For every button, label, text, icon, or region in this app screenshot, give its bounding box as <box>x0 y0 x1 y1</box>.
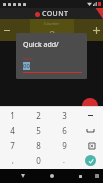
button[interactable]: Add counter <box>82 98 98 114</box>
button[interactable]: 7 <box>0 138 25 153</box>
staticText: 5 <box>36 125 41 136</box>
button[interactable]: 9 <box>51 138 77 153</box>
button[interactable]: Enter <box>77 153 103 168</box>
staticText: Value <box>23 56 34 61</box>
button[interactable]: Increment <box>92 26 100 34</box>
button[interactable]: Back <box>18 171 28 181</box>
staticText: . <box>63 156 65 166</box>
staticText: 9 <box>62 140 67 151</box>
button[interactable]: , <box>0 153 25 168</box>
button[interactable]: 6 <box>51 123 77 138</box>
button[interactable]: Home <box>47 171 57 181</box>
button[interactable]: 8 <box>25 138 51 153</box>
button[interactable]: 1 <box>0 108 25 123</box>
staticText: , <box>12 156 14 166</box>
button[interactable]: Counter <box>30 19 74 41</box>
staticText: Quick add/subtract <box>23 40 82 50</box>
staticText: 3 <box>62 110 67 121</box>
button[interactable]: 3 <box>51 108 77 123</box>
staticText: 1 <box>10 110 15 121</box>
button[interactable]: 5 <box>25 123 51 138</box>
button[interactable]: Minus <box>77 108 103 123</box>
button[interactable]: Space <box>77 123 103 138</box>
staticText: 4 <box>10 125 15 136</box>
button[interactable]: . <box>51 153 77 168</box>
staticText: 0 <box>36 155 41 166</box>
button[interactable]: Split screen <box>95 174 99 178</box>
button[interactable]: Decrement <box>3 26 11 34</box>
staticText: 7 <box>10 140 15 151</box>
staticText: 00 <box>23 62 30 70</box>
staticText: Counter <box>44 21 60 26</box>
staticText: 2 <box>36 110 41 121</box>
button[interactable]: Recent apps <box>75 171 85 181</box>
button[interactable]: 4 <box>0 123 25 138</box>
staticText: 8 <box>36 140 41 151</box>
button[interactable]: 2 <box>25 108 51 123</box>
staticText: 6 <box>62 125 67 136</box>
staticText: 0 <box>49 27 56 41</box>
button[interactable]: Backspace <box>77 138 103 153</box>
button[interactable]: 0 <box>25 153 51 168</box>
staticText: COUNT <box>42 9 69 19</box>
